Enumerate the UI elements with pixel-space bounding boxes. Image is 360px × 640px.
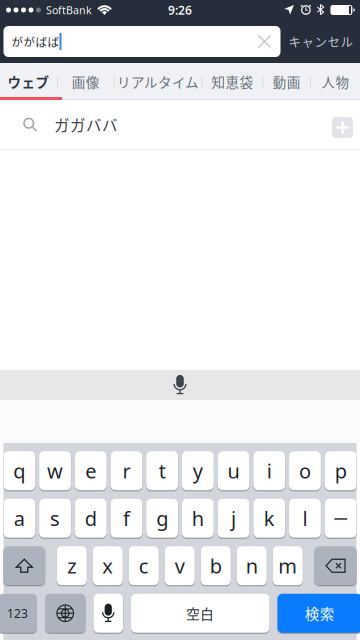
staticText: o [299,457,311,484]
staticText: t [159,457,166,484]
staticText: g [156,505,168,532]
button[interactable]: n [237,546,267,585]
staticText: 動画 [273,72,301,91]
button[interactable]: p [325,451,356,490]
button[interactable]: 検索 [277,594,360,633]
staticText: リアルタイム [117,72,199,91]
button[interactable]: k [253,499,285,538]
button[interactable]: 画像 [58,63,113,100]
button[interactable]: 空白 [131,594,269,633]
staticText: d [85,505,97,532]
staticText: ガガババ [54,113,118,136]
staticText: 人物 [321,72,349,91]
staticText: 123 [7,605,28,621]
staticText: p [335,457,347,484]
button[interactable]: h [182,499,214,538]
staticText: x [102,552,113,579]
button[interactable]: キャンセル [288,32,353,51]
button[interactable]: v [165,546,195,585]
button[interactable]: t [146,451,178,490]
staticText: a [14,505,25,532]
button[interactable]: q [3,451,35,490]
button[interactable]: ガガババ [0,100,360,150]
staticText: n [246,552,258,579]
staticText: j [231,505,236,532]
staticText: y [193,457,203,484]
button[interactable]: クリア [251,28,277,54]
staticText: ががばば [11,33,59,50]
staticText: 空白 [186,603,214,623]
staticText: b [210,552,222,579]
staticText: r [122,457,130,484]
button[interactable]: f [110,499,142,538]
button[interactable]: リアルタイム [114,63,201,100]
button[interactable]: ウェブ [0,63,57,100]
button[interactable]: r [110,451,142,490]
button[interactable]: o [289,451,321,490]
staticText: f [123,505,130,532]
staticText: c [139,552,149,579]
staticText: q [13,457,25,484]
staticText: ー [333,507,349,530]
staticText: キャンセル [288,32,353,51]
button[interactable]: シフト [3,546,45,585]
staticText: 知恵袋 [211,72,253,91]
staticText: 9:26 [168,2,192,18]
staticText: h [192,505,204,532]
button[interactable]: 次のキーボード [45,594,85,633]
staticText: ウェブ [7,72,49,91]
staticText: m [278,552,297,579]
button[interactable]: w [39,451,71,490]
button[interactable]: g [146,499,178,538]
button[interactable]: 123 [0,594,37,633]
button[interactable]: d [75,499,107,538]
button[interactable]: e [75,451,107,490]
button[interactable]: 人物 [311,63,360,100]
staticText: i [267,457,272,484]
staticText: 画像 [72,72,100,91]
staticText: u [227,457,239,484]
button[interactable]: 知恵袋 [202,63,262,100]
button[interactable]: 検索語を追加 [332,114,353,135]
staticText: w [47,457,63,484]
staticText: z [67,552,76,579]
button[interactable]: 動画 [263,63,310,100]
button[interactable]: c [129,546,159,585]
button[interactable]: s [39,499,71,538]
button[interactable]: z [57,546,87,585]
button[interactable]: j [218,499,249,538]
staticText: k [264,505,275,532]
button[interactable]: 音声入力 [93,594,123,633]
staticText: 検索 [305,603,335,624]
button[interactable]: b [201,546,231,585]
button[interactable]: x [93,546,123,585]
button[interactable]: i [253,451,285,490]
button[interactable]: 音声入力 [0,370,360,400]
staticText: v [175,552,185,579]
button[interactable]: y [182,451,214,490]
staticText: SoftBank [46,3,92,17]
button[interactable]: u [218,451,249,490]
button[interactable]: m [273,546,303,585]
staticText: s [50,505,60,532]
button[interactable]: a [3,499,35,538]
staticText: l [302,505,307,532]
staticText: e [85,457,96,484]
button[interactable]: 削除 [314,546,356,585]
button[interactable]: ー [325,499,356,538]
button[interactable]: l [289,499,321,538]
